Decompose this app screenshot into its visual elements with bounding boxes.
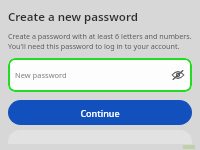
button[interactable]: Continue [8, 100, 192, 125]
button[interactable]: Show password [171, 68, 185, 82]
staticText: Create a password with at least 6 letter… [8, 31, 192, 51]
staticText: New password [15, 70, 171, 80]
staticText: Continue [80, 107, 120, 119]
staticText: Create a new password [8, 9, 138, 25]
button[interactable]: New password [8, 58, 192, 92]
